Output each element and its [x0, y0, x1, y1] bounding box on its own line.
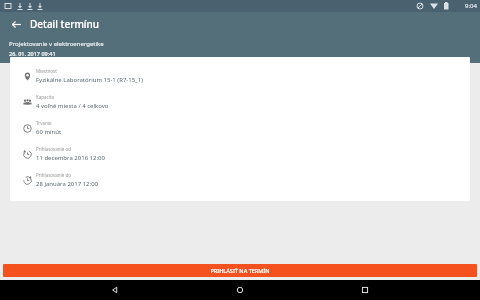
staticText: Fyzikálne Laboratórium 15-1 (R7-15_1): [36, 76, 144, 84]
staticText: 4 voľné miesta / 4 celkovo: [36, 102, 109, 110]
staticText: Projektovanie v elektroenergetike: [9, 40, 104, 48]
button[interactable]: PRIHLÁSIŤ NA TERMÍN: [3, 264, 477, 277]
staticText: Miestnosť: [36, 68, 57, 74]
button[interactable]: Trvanie: [10, 115, 470, 141]
button[interactable]: Back: [105, 280, 125, 300]
staticText: 60 minút: [36, 128, 62, 136]
staticText: 9:04: [465, 2, 477, 10]
button[interactable]: Home: [230, 280, 250, 300]
staticText: Kapacita: [36, 94, 55, 100]
staticText: 28 januára 2017 12:00: [36, 180, 99, 188]
staticText: Trvanie: [36, 120, 52, 126]
staticText: 11 decembra 2016 12:00: [36, 154, 105, 162]
button[interactable]: Miestnosť: [10, 63, 470, 89]
button[interactable]: Back: [6, 14, 26, 34]
staticText: Detail termínu: [30, 17, 100, 31]
button[interactable]: Prihlasovanie od: [10, 141, 470, 167]
staticText: Prihlasovanie do: [36, 172, 71, 178]
staticText: 26. 01. 2017 09:41: [9, 50, 56, 57]
staticText: Prihlasovanie od: [36, 146, 71, 152]
button[interactable]: Prihlasovanie do: [10, 167, 470, 193]
button[interactable]: Kapacita: [10, 89, 470, 115]
staticText: PRIHLÁSIŤ NA TERMÍN: [210, 267, 270, 274]
button[interactable]: Recent apps: [355, 280, 375, 300]
